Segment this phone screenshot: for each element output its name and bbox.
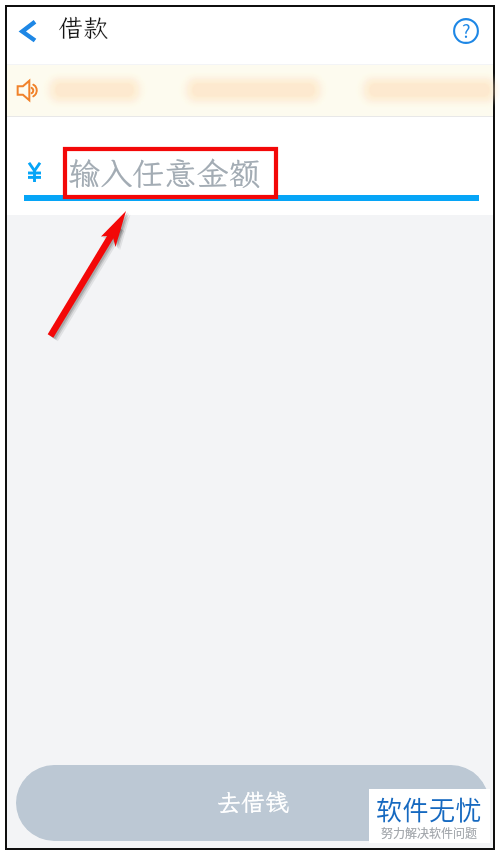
button[interactable]: Announcement bbox=[7, 65, 493, 116]
staticText: 借款 bbox=[58, 11, 109, 44]
staticText: ? bbox=[462, 17, 471, 43]
button[interactable]: 输入任意金额 bbox=[57, 145, 479, 195]
staticText: 软件无忧 bbox=[376, 790, 483, 828]
staticText: 努力解决软件问题 bbox=[381, 824, 478, 841]
button[interactable]: 去借钱 bbox=[16, 765, 489, 841]
button[interactable]: Back bbox=[7, 7, 55, 64]
button[interactable]: Help bbox=[443, 8, 489, 54]
other: Announcement bbox=[17, 80, 39, 101]
staticText: 去借钱 bbox=[217, 786, 289, 818]
staticText: 输入任意金额 bbox=[68, 152, 261, 194]
